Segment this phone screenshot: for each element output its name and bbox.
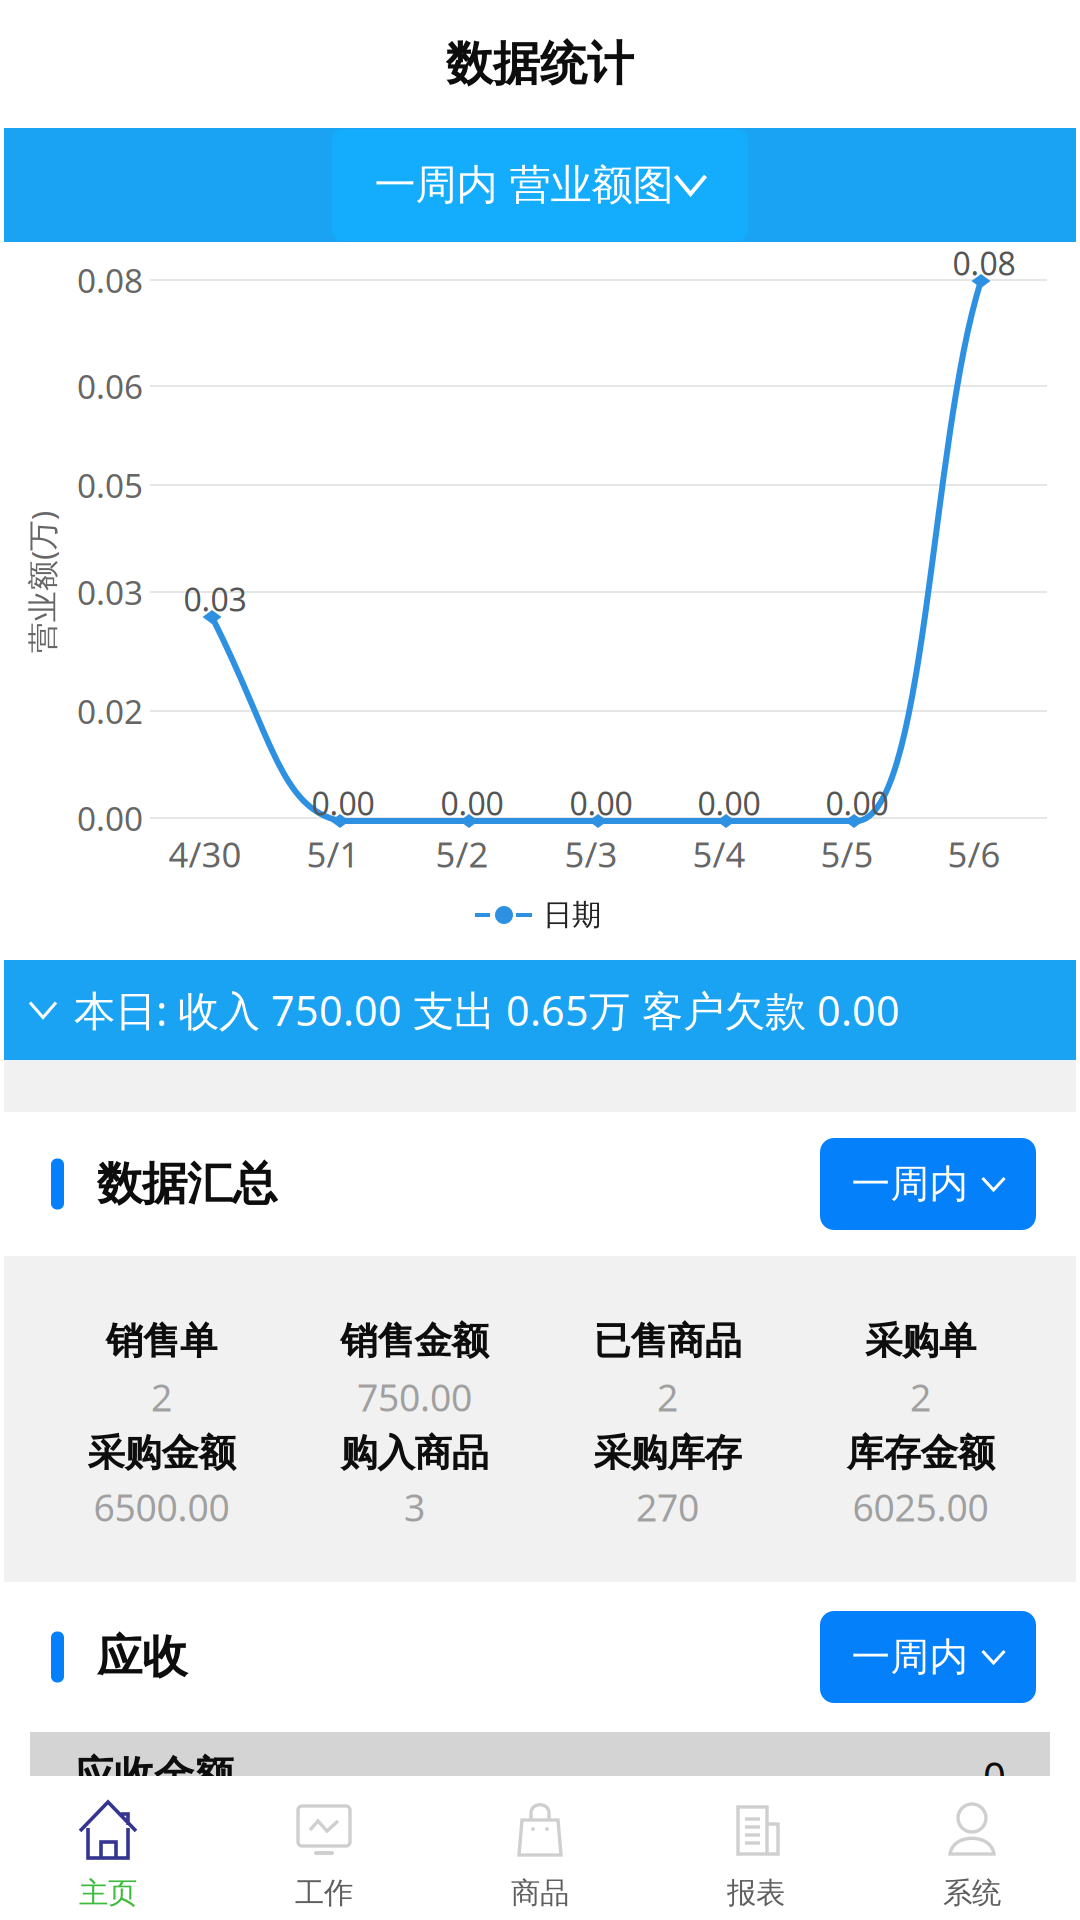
staticText: 0.08 — [77, 258, 143, 302]
staticText: 营业额(万) — [0, 562, 113, 602]
staticText: 0.03 — [183, 578, 246, 620]
staticText: 2 — [657, 1372, 678, 1422]
button[interactable]: 系统 — [864, 1776, 1080, 1920]
staticText: 0.00 — [311, 782, 374, 824]
staticText: 0.03 — [77, 570, 143, 614]
staticText: 已售商品 — [593, 1318, 741, 1364]
button[interactable]: 一周内 营业额图 — [332, 129, 748, 241]
staticText: 0.00 — [440, 782, 503, 824]
staticText: 购入商品 — [340, 1430, 488, 1476]
staticText: 主页 — [79, 1875, 137, 1911]
staticText: 数据统计 — [446, 35, 634, 93]
staticText: 0.06 — [77, 364, 143, 408]
staticText: 销售单 — [106, 1318, 217, 1364]
staticText: 一周内 — [851, 1160, 968, 1208]
button[interactable]: 报表 — [648, 1776, 864, 1920]
staticText: 数据汇总 — [97, 1156, 277, 1212]
staticText: 本日: 收入 750.00 支出 0.65万 客户欠款 0.00 — [74, 983, 900, 1037]
staticText: 5/4 — [692, 831, 745, 877]
button[interactable]: 主页 — [0, 1776, 216, 1920]
staticText: 2 — [910, 1372, 931, 1422]
staticText: 0.05 — [77, 463, 143, 507]
staticText: 0.00 — [77, 796, 143, 840]
button[interactable]: 一周内 — [820, 1138, 1036, 1230]
staticText: 系统 — [943, 1875, 1001, 1911]
staticText: 0.08 — [952, 242, 1015, 284]
staticText: 5/3 — [564, 831, 617, 877]
staticText: 商品 — [511, 1875, 569, 1911]
staticText: 6500.00 — [93, 1482, 229, 1532]
staticText: 0.00 — [569, 782, 632, 824]
button[interactable]: 一周内 — [820, 1611, 1036, 1703]
staticText: 应收金额 — [74, 1751, 234, 1800]
staticText: 0.00 — [825, 782, 888, 824]
staticText: 日期 — [543, 897, 601, 933]
staticText: 0 — [983, 1749, 1006, 1802]
staticText: 2 — [151, 1372, 172, 1422]
button[interactable]: 工作 — [216, 1776, 432, 1920]
staticText: 5/6 — [947, 831, 1000, 877]
button[interactable]: 商品 — [432, 1776, 648, 1920]
staticText: 库存金额 — [846, 1430, 994, 1476]
staticText: 750.00 — [357, 1372, 472, 1422]
staticText: 报表 — [727, 1875, 785, 1911]
staticText: 5/2 — [435, 831, 488, 877]
staticText: 6025.00 — [852, 1482, 988, 1532]
button[interactable]: 本日: 收入 750.00 支出 0.65万 客户欠款 0.00 — [0, 960, 1080, 1060]
staticText: 采购单 — [865, 1318, 976, 1364]
staticText: 一周内 营业额图 — [374, 160, 673, 210]
staticText: 应收 — [97, 1629, 187, 1685]
staticText: 270 — [636, 1482, 699, 1532]
staticText: 采购金额 — [87, 1430, 235, 1476]
staticText: 工作 — [295, 1875, 353, 1911]
staticText: 3 — [404, 1482, 425, 1532]
staticText: 5/5 — [820, 831, 873, 877]
staticText: 5/1 — [306, 831, 359, 877]
staticText: 0.00 — [697, 782, 760, 824]
staticText: 一周内 — [851, 1633, 968, 1681]
staticText: 采购库存 — [593, 1430, 741, 1476]
staticText: 4/30 — [168, 831, 241, 877]
button[interactable]: 应收金额 — [30, 1732, 1050, 1820]
staticText: 销售金额 — [340, 1318, 488, 1364]
staticText: 0.02 — [77, 689, 143, 733]
